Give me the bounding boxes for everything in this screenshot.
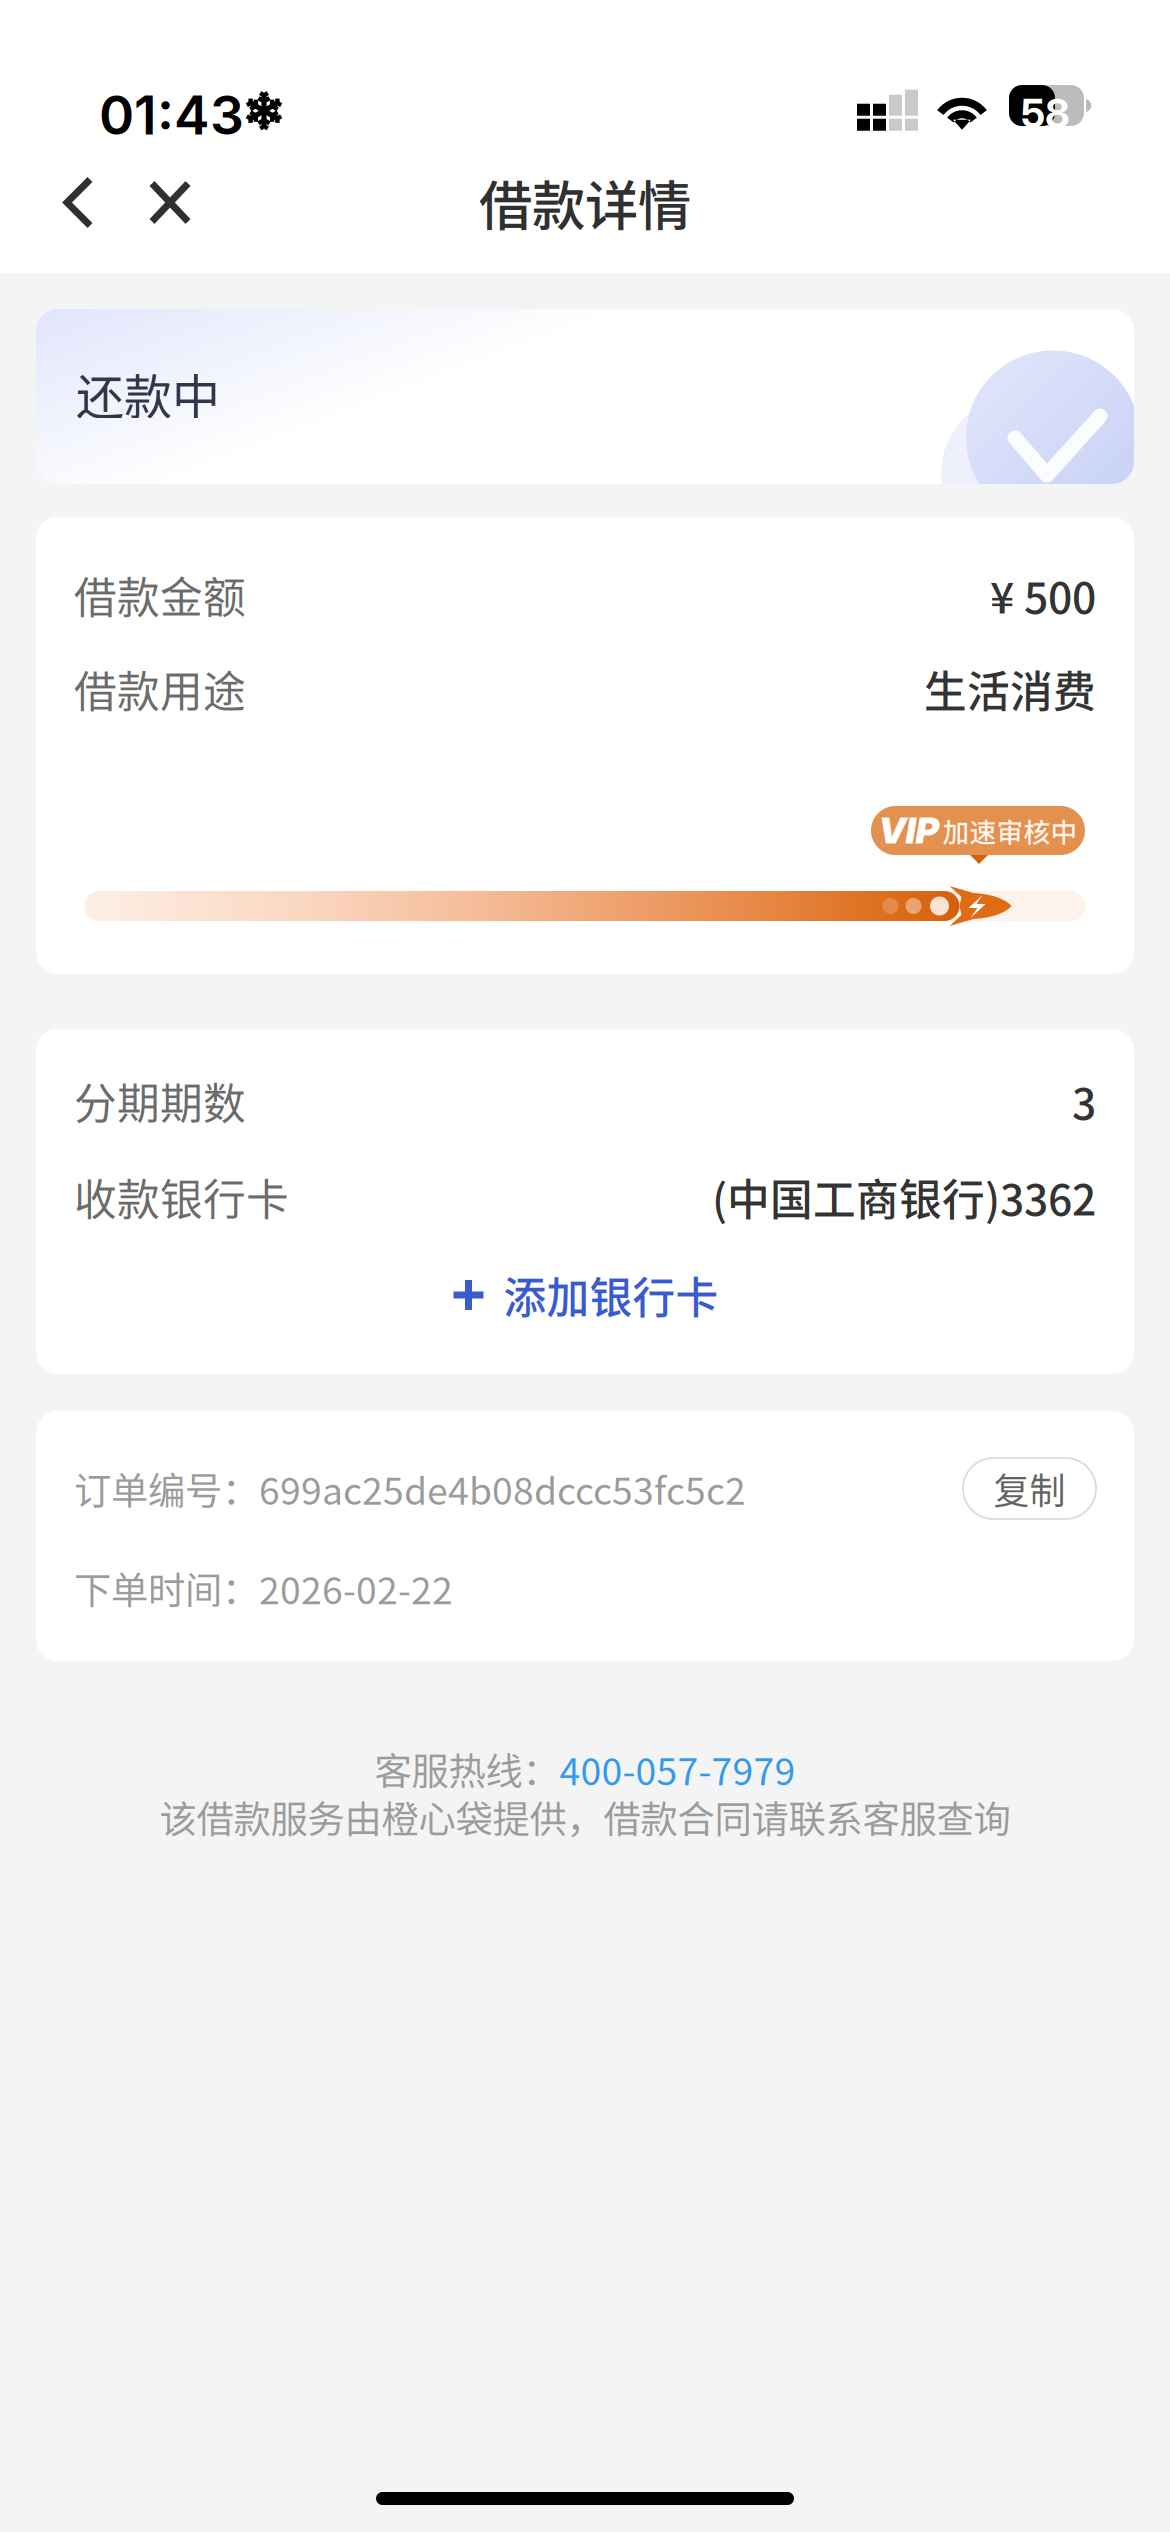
button[interactable]: 添加银行卡 — [74, 1261, 1096, 1329]
staticText: VIP — [878, 809, 938, 852]
button[interactable]: Back — [38, 150, 120, 254]
staticText: 400-057-7979 — [559, 1742, 795, 1796]
button[interactable]: 400-057-7979 — [559, 1742, 795, 1796]
staticText: 2026-02-22 — [259, 1561, 453, 1615]
staticText: 借款详情 — [479, 164, 691, 241]
staticText: 客服热线： — [374, 1742, 559, 1796]
staticText: 加速审核中 — [942, 811, 1077, 850]
staticText: 699ac25de4b08dccc53fc5c2 — [259, 1461, 746, 1516]
button[interactable]: 复制 — [963, 1458, 1096, 1519]
staticText: 下单时间： — [74, 1561, 259, 1615]
staticText: 生活消费 — [924, 658, 1096, 720]
staticText: 复制 — [993, 1462, 1065, 1514]
staticText: 58 — [1021, 89, 1070, 137]
staticText: 分期期数 — [74, 1070, 246, 1132]
staticText: 借款金额 — [74, 564, 246, 626]
staticText: 订单编号： — [74, 1461, 259, 1516]
staticText: 3 — [1072, 1070, 1096, 1132]
staticText: 添加银行卡 — [503, 1264, 718, 1326]
staticText: 该借款服务由橙心袋提供，借款合同请联系客服查询 — [159, 1790, 1010, 1844]
button[interactable]: Close — [120, 150, 220, 254]
staticText: 收款银行卡 — [74, 1166, 289, 1228]
staticText: ¥ 500 — [990, 564, 1096, 626]
staticText: 还款中 — [76, 359, 220, 428]
staticText: 借款用途 — [74, 658, 246, 720]
staticText: 01:43 — [99, 83, 244, 147]
staticText: (中国工商银行)3362 — [712, 1166, 1096, 1228]
